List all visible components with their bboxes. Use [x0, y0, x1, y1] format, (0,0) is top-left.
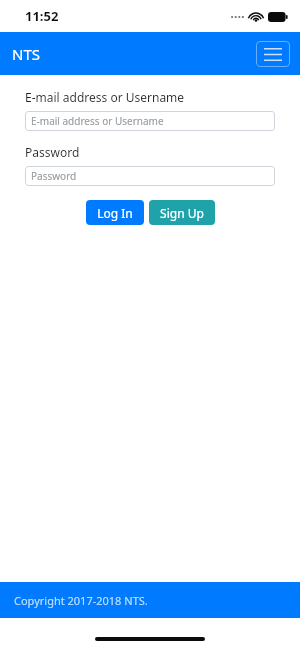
staticText: Sign Up — [160, 205, 204, 221]
button[interactable]: Open navigation menu — [256, 41, 290, 67]
staticText: E-mail address or Username — [25, 89, 185, 105]
button[interactable]: Password — [25, 166, 275, 186]
button[interactable]: Log In — [86, 200, 144, 225]
staticText: Copyright 2017-2018 NTS. — [14, 593, 148, 608]
staticText: 11:52 — [25, 7, 59, 25]
button[interactable]: NTS — [12, 44, 40, 64]
button[interactable]: Sign Up — [149, 200, 215, 225]
staticText: Password — [25, 144, 80, 160]
staticText: Log In — [97, 205, 133, 221]
button[interactable]: E-mail address or Username — [25, 111, 275, 131]
staticText: Password — [31, 169, 77, 183]
staticText: E-mail address or Username — [31, 114, 164, 128]
